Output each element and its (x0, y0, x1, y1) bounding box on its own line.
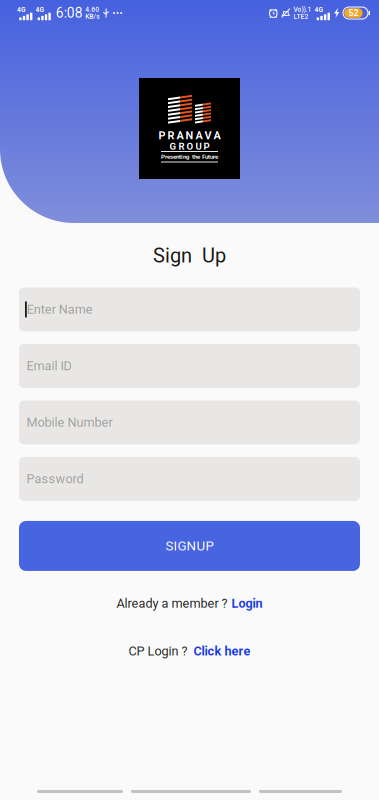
staticText: Sign Up (153, 244, 226, 267)
button[interactable]: Email ID (19, 344, 360, 388)
button[interactable]: Already a member ? (108, 592, 270, 615)
staticText: Login (231, 596, 262, 611)
staticText: 6:08 (56, 5, 83, 21)
staticText: Presenting the Future (161, 153, 218, 160)
button[interactable]: Enter Name (19, 287, 360, 331)
staticText: Click here (193, 644, 250, 659)
staticText: Enter Name (27, 302, 93, 317)
staticText: 4G (314, 6, 323, 14)
button[interactable]: Mobile Number (19, 400, 360, 444)
staticText: LTE2 (293, 12, 308, 20)
staticText: Vo)).1 (293, 6, 311, 13)
staticText: CP Login ? (128, 644, 187, 659)
staticText: Password (27, 471, 84, 486)
staticText: G R O U P (169, 141, 209, 152)
staticText: Already a member ? (116, 596, 227, 611)
staticText: Mobile Number (27, 415, 113, 430)
staticText: KB/s (85, 12, 99, 20)
staticText: SIGNUP (165, 538, 213, 554)
button[interactable]: SIGNUP (19, 521, 360, 571)
staticText: 52 (348, 8, 358, 18)
staticText: Email ID (27, 358, 72, 373)
staticText: 4.60 (85, 6, 99, 13)
staticText: 4G (17, 6, 26, 14)
button[interactable]: Password (19, 457, 360, 501)
staticText: P R A N A V A (158, 129, 220, 142)
button[interactable]: CP Login ? (120, 640, 258, 663)
staticText: 4G (35, 6, 44, 14)
